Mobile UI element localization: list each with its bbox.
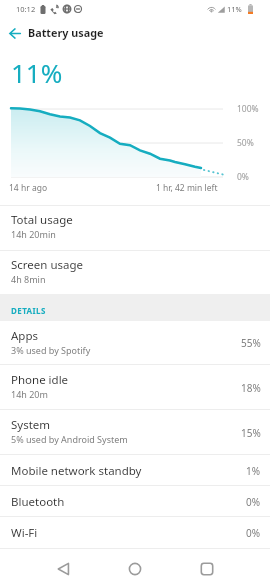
staticText: Phone idle bbox=[11, 372, 69, 388]
staticText: 5% used by Android System bbox=[11, 433, 128, 445]
staticText: 55% bbox=[241, 336, 261, 350]
button[interactable]: Recent apps bbox=[191, 553, 223, 585]
staticText: 3% used by Spotify bbox=[11, 344, 91, 356]
button[interactable]: Apps bbox=[0, 321, 270, 365]
staticText: 14 hr ago bbox=[9, 182, 48, 194]
button[interactable]: Wi-Fi bbox=[0, 517, 270, 549]
staticText: 0% bbox=[246, 526, 261, 540]
staticText: Bluetooth bbox=[11, 494, 65, 510]
staticText: Total usage bbox=[11, 212, 73, 228]
button[interactable]: System bbox=[0, 410, 270, 455]
button[interactable]: Screen usage bbox=[0, 250, 270, 294]
staticText: Screen usage bbox=[11, 257, 84, 273]
staticText: Battery usage bbox=[28, 25, 104, 40]
staticText: 11% bbox=[227, 4, 242, 14]
staticText: 1 hr, 42 min left bbox=[156, 182, 218, 194]
button[interactable]: Back bbox=[47, 553, 79, 585]
button[interactable]: Home bbox=[119, 553, 151, 585]
staticText: 100% bbox=[237, 103, 259, 115]
staticText: 18% bbox=[241, 381, 261, 395]
staticText: Wi-Fi bbox=[11, 525, 38, 541]
staticText: 0% bbox=[237, 171, 249, 183]
staticText: 10:12 bbox=[16, 4, 36, 14]
staticText: 15% bbox=[241, 426, 261, 440]
staticText: 14h 20m bbox=[11, 388, 48, 400]
staticText: 14h 20min bbox=[11, 228, 56, 240]
staticText: 4h 8min bbox=[11, 273, 46, 285]
button[interactable]: Mobile network standby bbox=[0, 455, 270, 486]
staticText: 50% bbox=[237, 137, 254, 149]
staticText: 0% bbox=[246, 495, 261, 509]
staticText: DETAILS bbox=[11, 305, 46, 316]
staticText: 1% bbox=[246, 464, 261, 478]
staticText: System bbox=[11, 417, 51, 433]
staticText: 11% bbox=[11, 55, 63, 90]
staticText: Mobile network standby bbox=[11, 463, 142, 479]
staticText: Apps bbox=[11, 328, 39, 344]
button[interactable]: Navigate up bbox=[3, 21, 27, 45]
button[interactable]: Phone idle bbox=[0, 365, 270, 410]
button[interactable]: Bluetooth bbox=[0, 486, 270, 517]
button[interactable]: Total usage bbox=[0, 205, 270, 250]
